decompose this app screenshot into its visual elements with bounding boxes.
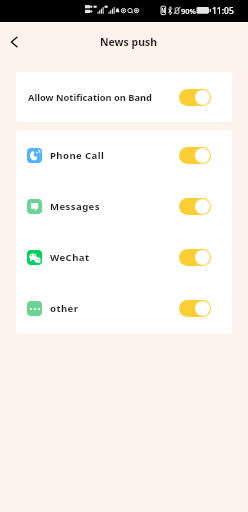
button[interactable]: Messages (16, 181, 232, 232)
staticText: Phone Call (50, 149, 105, 162)
button[interactable]: other switch, on (179, 300, 211, 317)
button[interactable]: WeChat (16, 232, 232, 283)
button[interactable]: WeChat switch, on (179, 249, 211, 266)
button[interactable]: other (16, 283, 232, 334)
button[interactable]: Back (2, 30, 26, 54)
staticText: Messages (50, 200, 100, 213)
button[interactable]: Allow Notification on Band (16, 72, 232, 122)
staticText: 90% (181, 6, 196, 16)
staticText: other (50, 302, 79, 315)
staticText: WeChat (50, 251, 90, 264)
staticText: News push (100, 35, 158, 49)
button[interactable]: Allow Notification on Band switch, on (179, 89, 211, 106)
button[interactable]: Phone Call (16, 130, 232, 181)
button[interactable]: Messages switch, on (179, 198, 211, 215)
staticText: Allow Notification on Band (28, 91, 152, 104)
staticText: 11:05 (212, 5, 234, 17)
button[interactable]: Phone Call switch, on (179, 147, 211, 164)
